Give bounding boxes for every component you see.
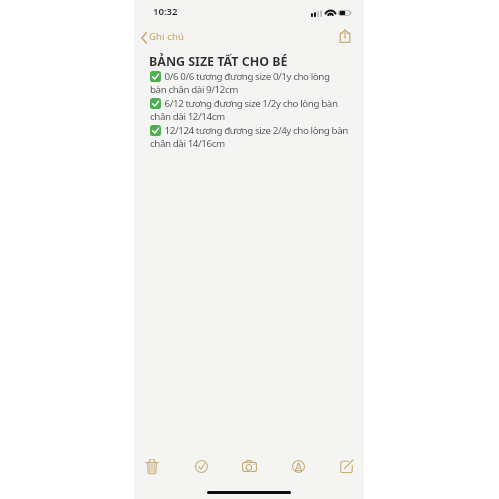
staticText: ☑6/12 tương đương size 1/2y cho lòng bàn…	[150, 97, 338, 122]
staticText: BẢNG SIZE TẤT CHO BÉ	[149, 53, 288, 70]
staticText: Ghi chú	[149, 30, 185, 43]
button[interactable]: Compose	[333, 456, 359, 482]
button[interactable]: Share	[336, 27, 354, 45]
button[interactable]: Markup	[285, 456, 311, 482]
button[interactable]: Camera	[236, 456, 262, 482]
button[interactable]: Checklist	[188, 456, 214, 482]
staticText: 10:32	[153, 5, 178, 18]
button[interactable]: Delete	[139, 456, 165, 482]
staticText: ☑12/124 tương đương size 2/4y cho lòng b…	[150, 124, 348, 149]
staticText: ☑0/6 0/6 tương đương size 0/1y cho lòng …	[150, 70, 330, 95]
button[interactable]: Ghi chú	[141, 30, 185, 43]
